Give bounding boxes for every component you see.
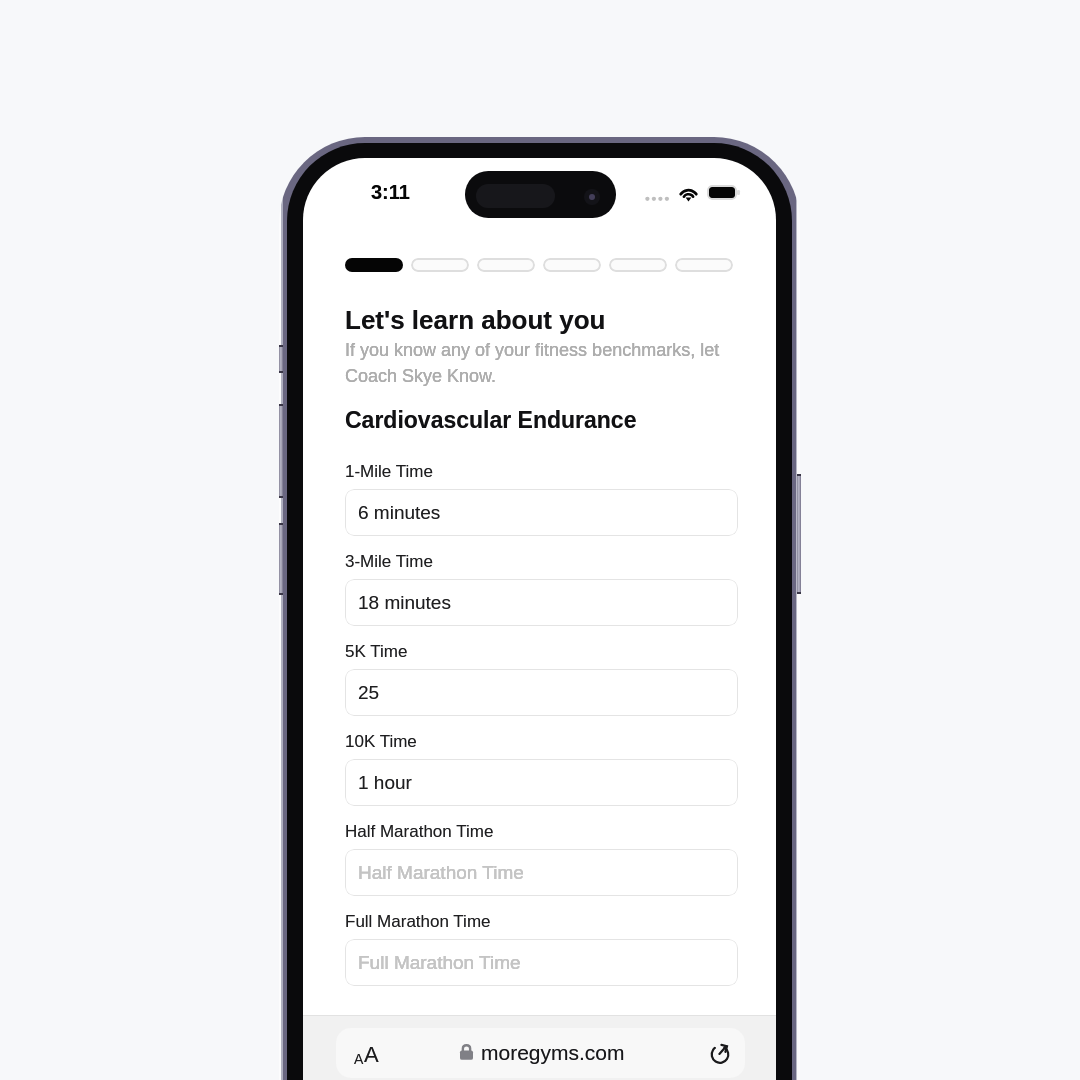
staticText: 25	[358, 682, 380, 703]
button[interactable]: Half Marathon Time	[345, 849, 738, 896]
staticText: 18 minutes	[358, 592, 451, 613]
staticText: 5K Time	[345, 642, 408, 661]
staticText: If you know any of your fitness benchmar…	[345, 340, 725, 385]
staticText: Cardiovascular Endurance	[345, 407, 637, 433]
other: Battery	[707, 185, 741, 201]
staticText: Full Marathon Time	[358, 952, 521, 973]
staticText: 18 minutes	[358, 592, 451, 613]
staticText: 25	[358, 682, 380, 703]
staticText: 3:11	[371, 181, 410, 203]
staticText: If you know any of your fitness benchmar…	[345, 340, 725, 385]
staticText: Half Marathon Time	[358, 862, 524, 883]
staticText: 1-Mile Time	[345, 462, 433, 481]
staticText: 1 hour	[358, 772, 412, 793]
button[interactable]: Step 5 of 6	[609, 258, 667, 272]
staticText: 6 minutes	[358, 502, 441, 523]
button[interactable]: Reload page	[703, 1036, 737, 1070]
staticText: A	[364, 1042, 379, 1067]
staticText: moregyms.com	[481, 1041, 625, 1064]
button[interactable]: Full Marathon Time	[345, 939, 738, 986]
staticText: 6 minutes	[358, 502, 441, 523]
staticText: 3-Mile Time	[345, 552, 433, 571]
button[interactable]: A	[336, 1028, 745, 1078]
staticText: Full Marathon Time	[345, 912, 491, 931]
staticText: A	[354, 1051, 364, 1067]
staticText: Full Marathon Time	[345, 912, 491, 931]
staticText: Half Marathon Time	[345, 822, 494, 841]
staticText: 10K Time	[345, 732, 417, 751]
button[interactable]: Step 6 of 6	[675, 258, 733, 272]
button[interactable]: 6 minutes	[345, 489, 738, 536]
staticText: A	[354, 1051, 364, 1067]
button[interactable]: 18 minutes	[345, 579, 738, 626]
staticText: Full Marathon Time	[358, 952, 521, 973]
other: Wi-Fi	[678, 185, 699, 201]
staticText: A	[364, 1042, 379, 1067]
button[interactable]: Step 1 of 6, completed	[345, 258, 403, 272]
staticText: Half Marathon Time	[345, 822, 494, 841]
staticText: 1 hour	[358, 772, 412, 793]
staticText: 10K Time	[345, 732, 417, 751]
staticText: Let's learn about you	[345, 305, 606, 334]
other: Cellular signal	[644, 192, 670, 206]
staticText: Cardiovascular Endurance	[345, 407, 637, 433]
staticText: Half Marathon Time	[358, 862, 524, 883]
staticText: 1-Mile Time	[345, 462, 433, 481]
button[interactable]: Step 3 of 6	[477, 258, 535, 272]
button[interactable]: Step 4 of 6	[543, 258, 601, 272]
staticText: moregyms.com	[481, 1041, 625, 1064]
button[interactable]: 1 hour	[345, 759, 738, 806]
staticText: 3-Mile Time	[345, 552, 433, 571]
staticText: 3:11	[371, 181, 410, 203]
staticText: Let's learn about you	[345, 305, 606, 334]
button[interactable]: 25	[345, 669, 738, 716]
staticText: 5K Time	[345, 642, 408, 661]
button[interactable]: Step 2 of 6	[411, 258, 469, 272]
